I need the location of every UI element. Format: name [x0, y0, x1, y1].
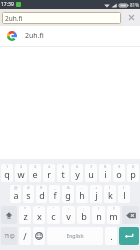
- staticText: !: [98, 206, 100, 211]
- staticText: q: [4, 168, 10, 180]
- staticText: g: [65, 189, 71, 201]
- staticText: p: [130, 168, 136, 180]
- staticText: 2: [20, 164, 23, 169]
- staticText: o: [116, 168, 122, 180]
- staticText: ?1☺: [4, 233, 15, 240]
- staticText: t: [61, 168, 65, 180]
- staticText: w: [17, 168, 25, 180]
- button[interactable]: 5: [57, 164, 69, 182]
- staticText: :: [68, 206, 70, 211]
- staticText: 3: [34, 164, 37, 169]
- button[interactable]: Emoji: [33, 227, 45, 245]
- button[interactable]: 7: [85, 164, 97, 182]
- button[interactable]: +: [90, 185, 102, 203]
- staticText: -: [81, 185, 83, 190]
- button[interactable]: 8: [99, 164, 111, 182]
- button[interactable]: ": [33, 206, 45, 224]
- staticText: v: [66, 210, 71, 222]
- staticText: s: [26, 189, 31, 201]
- staticText: x: [37, 210, 42, 222]
- staticText: 6: [76, 164, 79, 169]
- staticText: d: [39, 189, 45, 201]
- staticText: 17:39: [1, 1, 14, 8]
- button[interactable]: :: [62, 206, 75, 224]
- staticText: 1: [6, 164, 9, 169]
- staticText: 9: [118, 164, 121, 169]
- button[interactable]: 9: [113, 164, 125, 182]
- staticText: k: [108, 189, 113, 201]
- staticText: f: [53, 189, 57, 201]
- staticText: 5: [62, 164, 65, 169]
- staticText: #: [27, 185, 30, 190]
- staticText: r: [47, 168, 51, 180]
- button[interactable]: Shift: [1, 206, 17, 224]
- button[interactable]: ): [118, 185, 130, 203]
- staticText: n: [96, 210, 102, 222]
- staticText: h: [79, 189, 85, 201]
- button[interactable]: -: [76, 185, 88, 203]
- button[interactable]: @: [10, 185, 21, 203]
- staticText: ;: [83, 206, 85, 211]
- staticText: i: [104, 168, 107, 180]
- staticText: ': [53, 206, 54, 211]
- staticText: c: [51, 210, 56, 222]
- staticText: ": [38, 206, 40, 211]
- button[interactable]: .: [105, 227, 117, 245]
- staticText: _: [54, 185, 56, 190]
- staticText: 0: [132, 164, 135, 169]
- staticText: b: [81, 210, 87, 222]
- staticText: e: [32, 168, 38, 180]
- staticText: m: [109, 210, 118, 222]
- staticText: .: [110, 230, 113, 242]
- button[interactable]: /: [19, 227, 31, 245]
- button[interactable]: 1: [1, 164, 13, 182]
- button[interactable]: $: [36, 185, 47, 203]
- staticText: $: [40, 185, 43, 190]
- button[interactable]: &: [62, 185, 74, 203]
- staticText: (: [109, 185, 111, 190]
- staticText: /: [23, 230, 27, 242]
- staticText: 2uh.fi: [25, 31, 44, 41]
- button[interactable]: *: [19, 206, 31, 224]
- button[interactable]: (: [104, 185, 116, 203]
- button[interactable]: 2uh.fi: [0, 26, 140, 46]
- staticText: &: [67, 185, 70, 190]
- button[interactable]: 4: [43, 164, 55, 182]
- button[interactable]: Backspace: [122, 206, 139, 224]
- staticText: @: [14, 185, 18, 190]
- staticText: u: [88, 168, 94, 180]
- staticText: z: [23, 210, 28, 222]
- button[interactable]: 0: [127, 164, 139, 182]
- button[interactable]: Clear: [122, 9, 140, 26]
- button[interactable]: !: [92, 206, 105, 224]
- staticText: 2uh.fi: [5, 14, 23, 23]
- staticText: j: [95, 189, 98, 201]
- button[interactable]: 2: [15, 164, 27, 182]
- staticText: 8: [104, 164, 107, 169]
- staticText: *: [24, 206, 27, 211]
- button[interactable]: #: [23, 185, 34, 203]
- staticText: ?: [113, 206, 115, 211]
- staticText: 4: [48, 164, 51, 169]
- staticText: 81%: [130, 2, 139, 8]
- staticText: +: [95, 185, 98, 190]
- button[interactable]: ;: [77, 206, 90, 224]
- button[interactable]: English: [47, 227, 103, 245]
- button[interactable]: ?1☺: [1, 227, 17, 245]
- button[interactable]: ': [47, 206, 60, 224]
- staticText: l: [123, 189, 126, 201]
- staticText: ): [123, 185, 125, 190]
- staticText: a: [13, 189, 19, 201]
- staticText: 7: [90, 164, 93, 169]
- button[interactable]: 2uh.fi: [2, 12, 121, 24]
- button[interactable]: 3: [29, 164, 41, 182]
- button[interactable]: _: [49, 185, 60, 203]
- staticText: y: [75, 168, 80, 180]
- button[interactable]: 6: [71, 164, 83, 182]
- staticText: English: [66, 233, 84, 240]
- button[interactable]: Enter: [119, 227, 139, 245]
- button[interactable]: ?: [107, 206, 120, 224]
